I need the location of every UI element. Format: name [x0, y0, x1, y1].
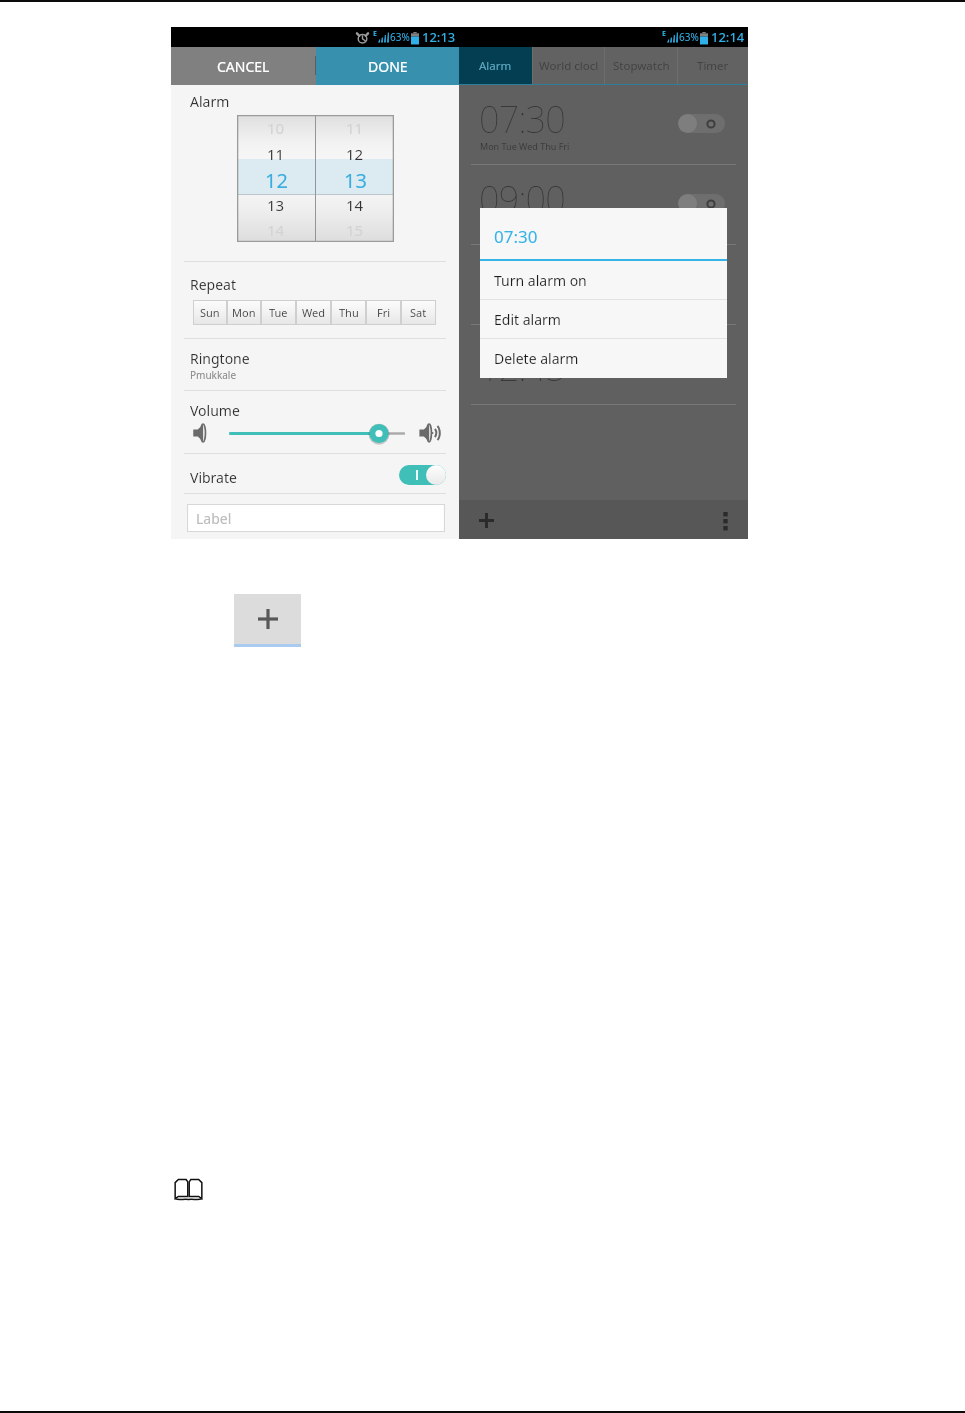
staticText: 11: [267, 144, 285, 164]
staticText: World clocl: [539, 58, 599, 74]
staticText: Sat: [410, 305, 427, 320]
staticText: DONE: [368, 57, 408, 76]
button[interactable]: Edit alarm: [480, 300, 727, 339]
button[interactable]: Toggle alarm: [678, 114, 725, 133]
staticText: 11:15: [479, 255, 566, 304]
staticText: 07:30: [494, 225, 538, 248]
staticText: 14: [346, 195, 364, 215]
button[interactable]: Sat: [401, 300, 436, 325]
button[interactable]: 14: [237, 217, 315, 242]
button[interactable]: 11:15: [459, 245, 748, 325]
button[interactable]: Alarm: [459, 47, 532, 85]
button[interactable]: Mon: [227, 300, 261, 325]
staticText: Vibrate: [190, 468, 237, 487]
button[interactable]: 09:00: [459, 165, 748, 245]
staticText: Volume: [190, 401, 240, 420]
button[interactable]: World clocl: [533, 47, 604, 85]
staticText: 12:13: [422, 28, 456, 46]
button[interactable]: Label: [187, 504, 445, 532]
button[interactable]: Sun: [193, 300, 227, 325]
button[interactable]: Tue: [261, 300, 296, 325]
staticText: Edit alarm: [494, 310, 561, 329]
staticText: Timer: [697, 58, 729, 74]
staticText: Repeat: [190, 275, 237, 294]
staticText: Thu: [339, 305, 359, 320]
staticText: E: [373, 29, 377, 39]
staticText: 12: [265, 167, 288, 192]
button[interactable]: Toggle alarm: [678, 194, 725, 213]
staticText: Tue: [269, 305, 288, 320]
button[interactable]: 14: [316, 192, 394, 217]
button[interactable]: 11: [316, 115, 394, 141]
staticText: Label: [196, 509, 232, 528]
button[interactable]: Delete alarm: [480, 339, 727, 378]
staticText: Wed: [302, 305, 325, 320]
staticText: 12: [346, 144, 364, 164]
button[interactable]: Fri: [366, 300, 401, 325]
staticText: 12:14: [711, 28, 745, 46]
staticText: Sun: [200, 305, 220, 320]
staticText: 12:45: [479, 343, 566, 392]
button[interactable]: 13: [237, 192, 315, 217]
staticText: Stopwatch: [613, 58, 670, 74]
staticText: Pmukkale: [190, 368, 237, 382]
staticText: Mon Tue Wed Thu Fri: [480, 220, 570, 232]
staticText: 11: [346, 118, 364, 138]
button[interactable]: DONE: [316, 47, 459, 85]
button[interactable]: Add alarm: [475, 509, 497, 531]
staticText: Alarm: [479, 58, 512, 74]
staticText: Mon Tue Wed Thu Fri: [480, 140, 570, 152]
staticText: 13: [267, 195, 285, 215]
staticText: Mon: [232, 305, 256, 320]
staticText: 13: [344, 167, 367, 192]
staticText: Fri: [377, 305, 391, 320]
button[interactable]: More options: [715, 509, 735, 529]
button[interactable]: 13: [316, 167, 394, 192]
button[interactable]: Wed: [296, 300, 331, 325]
button[interactable]: 15: [316, 217, 394, 242]
button[interactable]: CANCEL: [171, 47, 316, 85]
button[interactable]: 07:30: [459, 85, 748, 165]
button[interactable]: 12:45: [459, 325, 748, 405]
button[interactable]: 10: [237, 115, 315, 141]
staticText: 07:30: [479, 95, 566, 144]
staticText: 15: [346, 220, 364, 240]
staticText: CANCEL: [217, 57, 270, 76]
button[interactable]: Turn alarm on: [480, 261, 727, 300]
staticText: 63%: [679, 30, 699, 44]
staticText: 09:00: [479, 175, 566, 224]
staticText: 63%: [390, 30, 410, 44]
button[interactable]: 12: [237, 167, 315, 192]
staticText: E: [662, 29, 666, 39]
button[interactable]: Add: [234, 594, 301, 644]
staticText: Turn alarm on: [494, 271, 587, 290]
staticText: Delete alarm: [494, 349, 579, 368]
staticText: Ringtone: [190, 349, 250, 368]
button[interactable]: 11: [237, 141, 315, 167]
button[interactable]: 12: [316, 141, 394, 167]
staticText: 10: [267, 118, 285, 138]
button[interactable]: Stopwatch: [605, 47, 677, 85]
button[interactable]: Timer: [678, 47, 748, 85]
staticText: Alarm: [190, 92, 230, 111]
button[interactable]: Vibrate: [399, 465, 446, 485]
button[interactable]: Thu: [331, 300, 366, 325]
staticText: 14: [267, 220, 285, 240]
